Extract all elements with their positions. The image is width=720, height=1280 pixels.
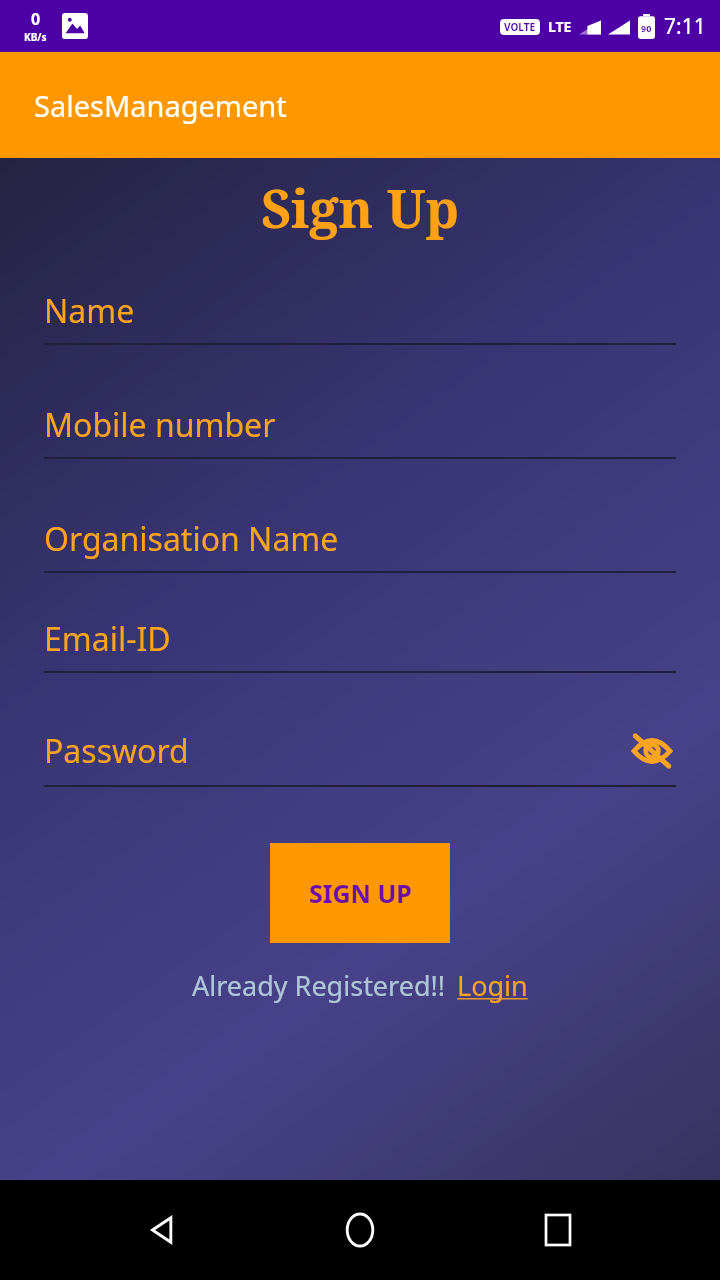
button[interactable]: Home (324, 1194, 396, 1266)
staticText: Organisation Name (44, 517, 676, 561)
staticText: LTE (548, 17, 572, 36)
button[interactable]: Mobile number (44, 403, 676, 459)
staticText: 90 (641, 22, 652, 34)
staticText: VOLTE (504, 20, 536, 34)
staticText: KB/s (24, 30, 47, 44)
button[interactable]: Organisation Name (44, 517, 676, 573)
button[interactable]: Login (457, 967, 528, 1004)
staticText: Name (44, 289, 676, 333)
staticText: Login (457, 967, 528, 1004)
staticText: Already Registered!! (192, 967, 446, 1004)
staticText: Mobile number (44, 403, 676, 447)
button[interactable]: Name (44, 289, 676, 345)
staticText: SIGN UP (309, 876, 412, 910)
button[interactable]: Password (44, 727, 676, 787)
staticText: Password (44, 729, 628, 773)
button[interactable]: Toggle password visibility (628, 727, 676, 775)
staticText: Sign Up (261, 172, 460, 243)
staticText: SalesManagement (34, 86, 287, 125)
button[interactable]: Recent apps (522, 1194, 594, 1266)
button[interactable]: Back (126, 1194, 198, 1266)
button[interactable]: Email-ID (44, 617, 676, 673)
button[interactable]: SIGN UP (270, 843, 450, 943)
staticText: 0 (31, 8, 41, 30)
staticText: Email-ID (44, 617, 676, 661)
staticText: 7:11 (664, 12, 706, 41)
